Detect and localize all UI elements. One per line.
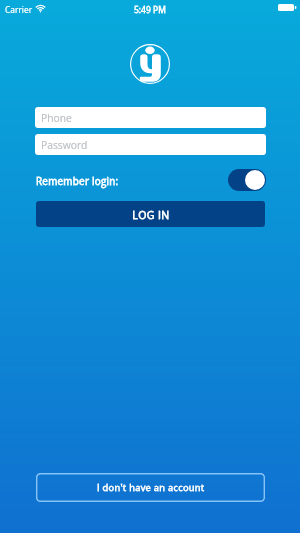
other: App logo — [130, 44, 170, 84]
button[interactable]: LOG IN — [36, 201, 265, 227]
button[interactable]: Remember login — [228, 169, 266, 191]
staticText: Carrier — [5, 4, 33, 15]
staticText: 5:49 PM — [134, 4, 166, 16]
button[interactable]: Password — [35, 134, 266, 155]
staticText: I don't have an account — [97, 481, 205, 494]
staticText: Phone — [41, 111, 72, 125]
staticText: Remember login: — [36, 174, 119, 187]
staticText: LOG IN — [132, 208, 170, 222]
button[interactable]: Phone — [35, 107, 266, 128]
staticText: Password — [41, 138, 88, 152]
other: Battery — [278, 4, 297, 11]
other: Wi-Fi — [36, 5, 45, 12]
button[interactable]: I don't have an account — [36, 473, 265, 502]
